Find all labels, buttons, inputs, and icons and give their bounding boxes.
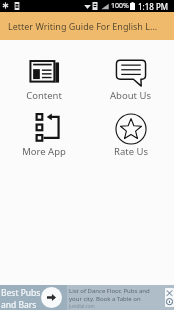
- staticText: and Bars: [1, 299, 37, 310]
- staticText: 100%: [111, 1, 129, 11]
- button[interactable]: Close ad: [165, 288, 174, 307]
- staticText: Content: [26, 89, 62, 102]
- button[interactable]: Rate Us: [87, 113, 174, 158]
- button[interactable]: Best Pubs: [0, 285, 174, 310]
- staticText: About Us: [110, 89, 151, 102]
- button[interactable]: About Us: [87, 57, 174, 102]
- staticText: your city. Book a Table on Justdial: [69, 295, 160, 303]
- staticText: 1:18 PM: [138, 1, 169, 12]
- staticText: Letter Writing Guide For English L...: [8, 20, 158, 32]
- button[interactable]: Content: [0, 57, 87, 102]
- button[interactable]: Letter Writing Guide For English L...: [0, 12, 174, 40]
- button[interactable]: More App: [0, 113, 87, 158]
- staticText: More App: [22, 145, 66, 158]
- staticText: Justdial.com: [69, 303, 95, 309]
- staticText: Best Pubs: [1, 287, 41, 299]
- staticText: List of Dance Floor, Pubs and Bars in: [69, 287, 160, 295]
- staticText: Rate Us: [114, 145, 148, 158]
